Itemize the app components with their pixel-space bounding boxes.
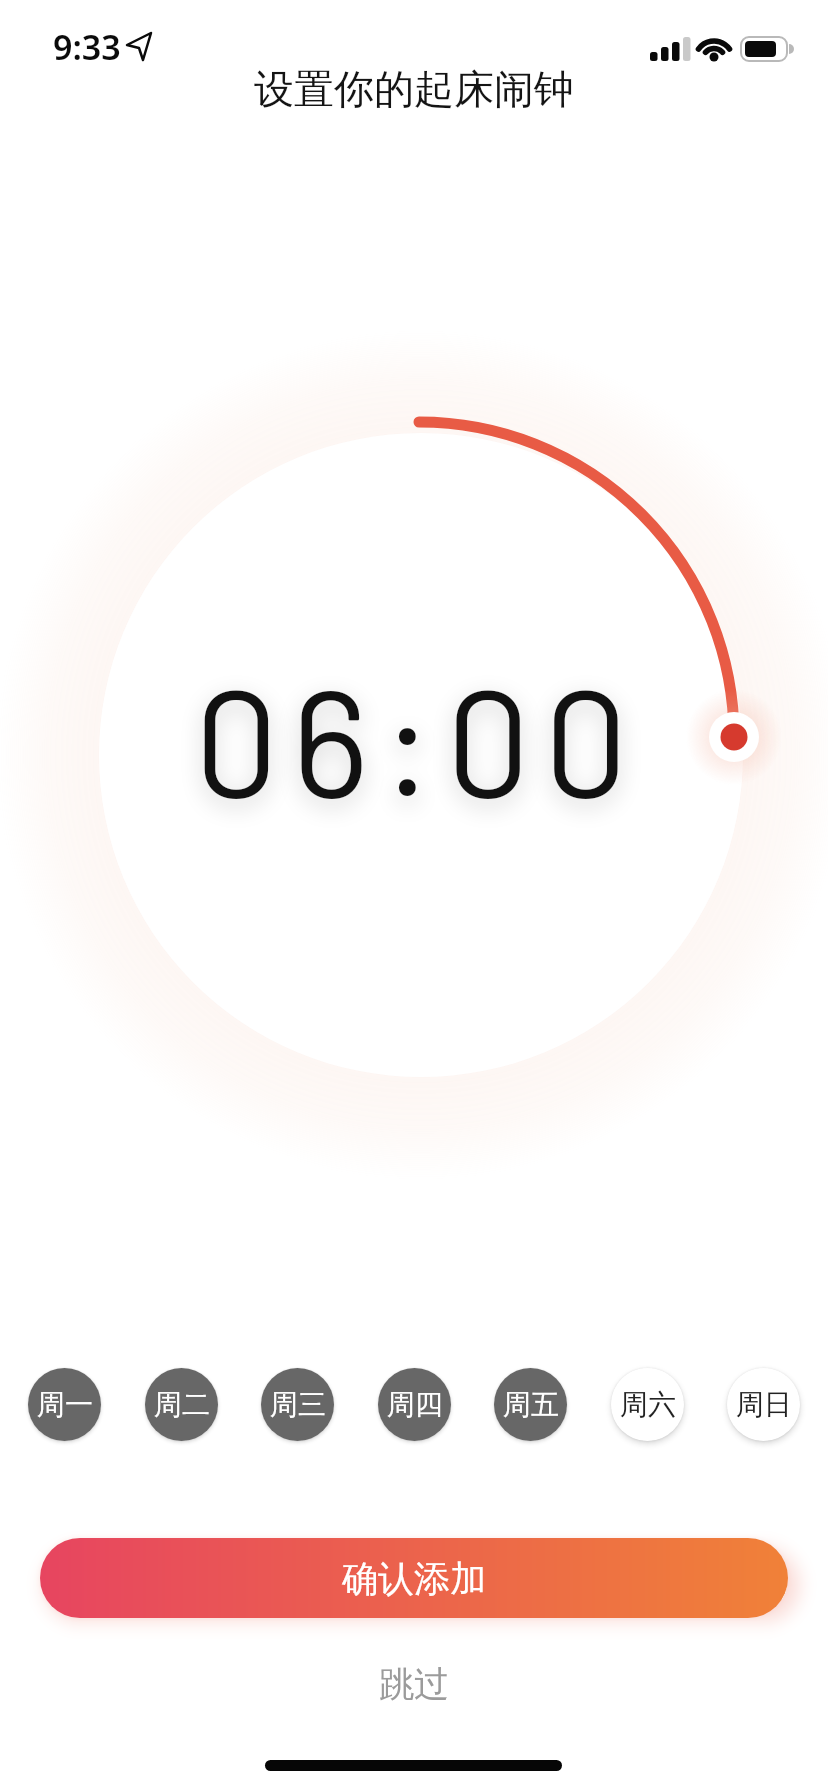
button[interactable]: 周一 xyxy=(28,1368,101,1441)
staticText: 周四 xyxy=(387,1387,443,1422)
button[interactable]: 周日 xyxy=(727,1368,800,1441)
staticText: 周三 xyxy=(270,1387,326,1422)
staticText: 周二 xyxy=(154,1387,210,1422)
button[interactable]: 确认添加 xyxy=(40,1538,788,1618)
button[interactable]: 周四 xyxy=(378,1368,451,1441)
button[interactable]: 周五 xyxy=(494,1368,567,1441)
staticText: 06:00 xyxy=(194,648,642,828)
staticText: 确认添加 xyxy=(342,1556,486,1601)
button[interactable]: 周六 xyxy=(611,1368,684,1441)
staticText: 周五 xyxy=(503,1387,559,1422)
button[interactable]: 跳过 xyxy=(379,1662,449,1706)
staticText: 周一 xyxy=(37,1387,93,1422)
button[interactable]: 周三 xyxy=(261,1368,334,1441)
staticText: 跳过 xyxy=(379,1662,449,1706)
staticText: 周日 xyxy=(736,1387,792,1422)
button[interactable]: 周二 xyxy=(145,1368,218,1441)
staticText: 设置你的起床闹钟 xyxy=(254,64,574,114)
staticText: 9:33 xyxy=(53,24,121,70)
staticText: 周六 xyxy=(620,1387,676,1422)
